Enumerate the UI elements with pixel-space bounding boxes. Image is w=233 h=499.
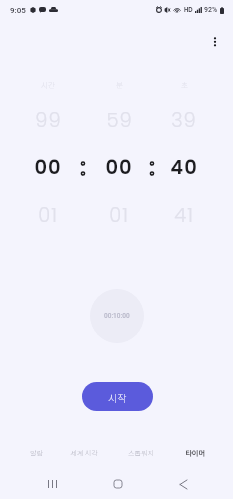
staticText: 00 [105,154,133,181]
button[interactable] [20,95,76,235]
staticText: 스톱워치 [128,448,154,458]
staticText: 9:05 [10,6,26,15]
button[interactable] [91,95,147,235]
staticText: 시간 [41,79,55,90]
button[interactable] [156,95,212,235]
staticText: 알람 [30,448,43,458]
button[interactable]: Recent apps [38,471,66,497]
button[interactable]: 세계 시각 [56,441,112,465]
button[interactable]: 스톱워치 [113,441,169,465]
button[interactable]: 타이머 [167,441,223,465]
button[interactable]: 00:10:00 [90,289,144,343]
staticText: 00:10:00 [104,312,130,320]
staticText: 초 [181,79,188,90]
button[interactable]: 알람 [8,441,64,465]
staticText: 시작 [108,390,127,404]
staticText: 00 [34,154,62,181]
button[interactable]: Home [104,471,132,497]
staticText: 01 [38,202,58,229]
staticText: 분 [116,79,123,90]
staticText: 01 [109,202,129,229]
staticText: 타이머 [185,450,205,457]
button[interactable]: More options [201,28,229,56]
staticText: 41 [174,202,194,229]
button[interactable]: 시작 [82,382,153,411]
button[interactable]: Back [169,471,197,497]
staticText: 39 [171,107,197,134]
staticText: HD [184,6,193,14]
staticText: 99 [35,107,62,134]
staticText: 92% [204,6,218,14]
staticText: 세계 시각 [70,448,98,458]
staticText: 59 [106,107,133,134]
staticText: 40 [170,154,198,181]
